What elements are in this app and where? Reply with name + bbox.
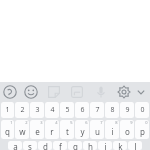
staticText: 3 <box>35 105 40 115</box>
button[interactable]: 0 <box>135 102 149 118</box>
button[interactable]: 8 <box>105 102 119 118</box>
staticText: 2 <box>25 120 28 125</box>
button[interactable]: k <box>113 141 127 150</box>
button[interactable]: f <box>53 141 67 150</box>
button[interactable]: 8 <box>105 120 119 139</box>
button[interactable]: 5 <box>60 102 74 118</box>
staticText: y <box>80 126 85 137</box>
staticText: r <box>50 126 54 137</box>
button[interactable]: Stickers <box>45 83 63 101</box>
staticText: q <box>5 126 10 137</box>
button[interactable]: Gboard menu <box>1 83 19 101</box>
staticText: 4 <box>50 105 55 115</box>
button[interactable]: 6 <box>75 120 89 139</box>
staticText: h <box>88 141 93 150</box>
button[interactable]: Emoji <box>22 83 40 101</box>
staticText: 0 <box>140 105 145 115</box>
staticText: e <box>35 126 40 137</box>
staticText: 8 <box>115 120 118 125</box>
staticText: 0 <box>145 120 148 125</box>
button[interactable]: 9 <box>120 102 134 118</box>
button[interactable]: a <box>8 141 22 150</box>
button[interactable]: Settings <box>115 83 133 101</box>
staticText: 1 <box>10 120 13 125</box>
button[interactable]: l <box>128 141 142 150</box>
staticText: 6 <box>85 120 88 125</box>
button[interactable]: s <box>23 141 37 150</box>
button[interactable]: 1 <box>1 102 14 118</box>
button[interactable]: Collapse toolbar <box>132 83 150 101</box>
button[interactable]: 7 <box>90 120 104 139</box>
staticText: 5 <box>65 105 70 115</box>
staticText: w <box>19 126 26 137</box>
button[interactable]: GIF <box>68 83 86 101</box>
staticText: i <box>111 126 114 137</box>
staticText: 5 <box>70 120 73 125</box>
staticText: 9 <box>125 105 130 115</box>
button[interactable]: 0 <box>135 120 149 139</box>
button[interactable]: 9 <box>120 120 134 139</box>
button[interactable]: h <box>83 141 97 150</box>
staticText: p <box>140 126 145 137</box>
staticText: l <box>134 141 137 150</box>
staticText: 2 <box>20 105 25 115</box>
button[interactable]: 3 <box>30 120 44 139</box>
staticText: t <box>66 126 69 137</box>
staticText: 4 <box>55 120 58 125</box>
button[interactable]: 7 <box>90 102 104 118</box>
staticText: f <box>59 141 62 150</box>
staticText: 9 <box>130 120 133 125</box>
button[interactable]: Voice input <box>92 83 110 101</box>
staticText: a <box>13 141 18 150</box>
staticText: u <box>95 126 100 137</box>
button[interactable]: g <box>68 141 82 150</box>
staticText: o <box>125 126 130 137</box>
button[interactable]: 2 <box>15 102 29 118</box>
button[interactable]: 2 <box>15 120 29 139</box>
staticText: g <box>73 141 78 150</box>
button[interactable]: 4 <box>45 120 59 139</box>
button[interactable]: 1 <box>1 120 14 139</box>
staticText: 8 <box>110 105 115 115</box>
button[interactable]: 3 <box>30 102 44 118</box>
staticText: 6 <box>80 105 85 115</box>
staticText: 1 <box>5 105 10 115</box>
button[interactable]: 5 <box>60 120 74 139</box>
staticText: j <box>104 141 107 150</box>
staticText: d <box>43 141 48 150</box>
button[interactable]: 6 <box>75 102 89 118</box>
staticText: s <box>28 141 32 150</box>
button[interactable]: 4 <box>45 102 59 118</box>
staticText: 7 <box>100 120 103 125</box>
staticText: 7 <box>95 105 100 115</box>
staticText: 3 <box>40 120 43 125</box>
button[interactable]: j <box>98 141 112 150</box>
button[interactable]: d <box>38 141 52 150</box>
staticText: k <box>118 141 123 150</box>
